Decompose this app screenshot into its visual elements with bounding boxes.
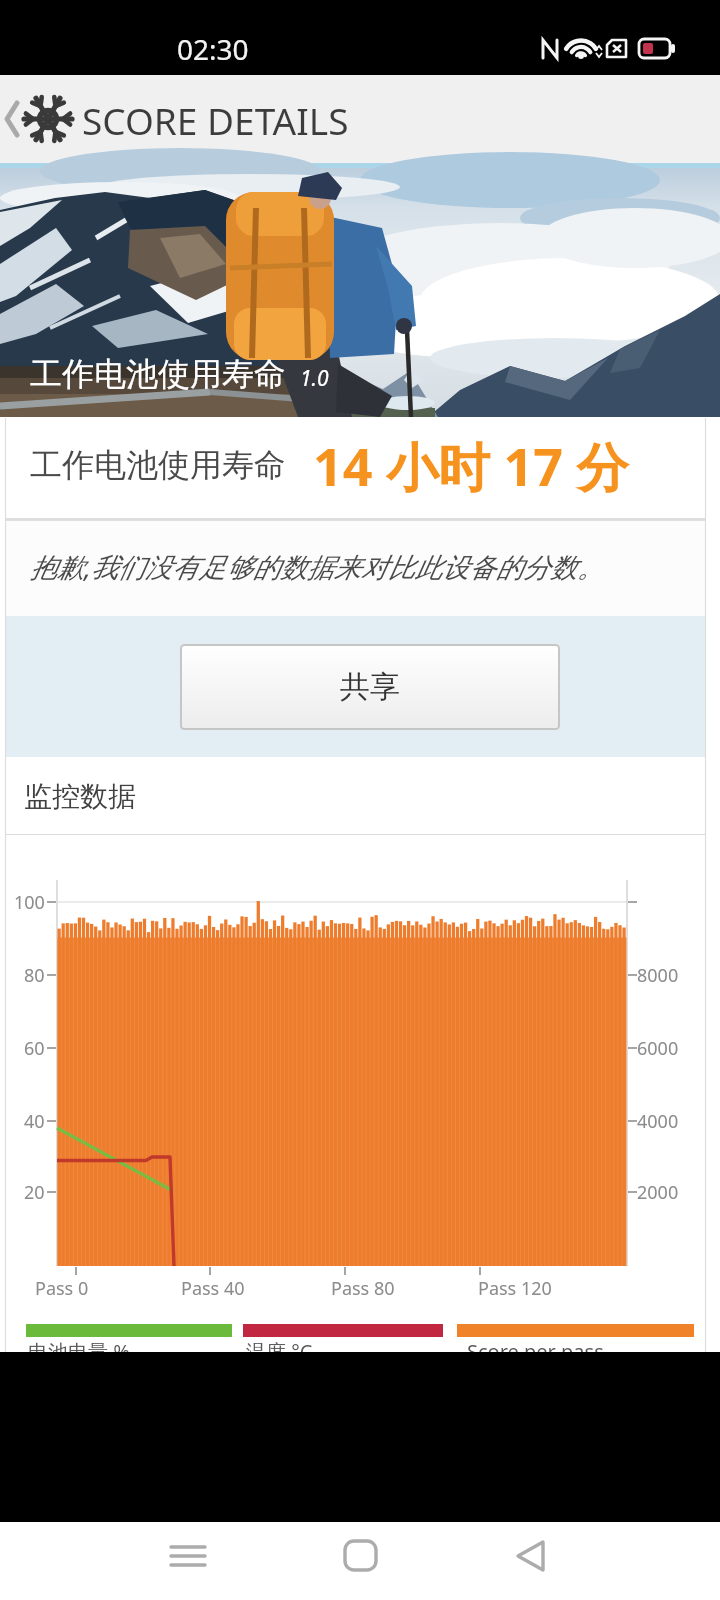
staticText: 02:30: [177, 30, 249, 68]
staticText: 2000: [637, 1180, 679, 1205]
staticText: 40: [24, 1109, 45, 1134]
staticText: 抱歉,我们没有足够的数据来对比此设备的分数。: [30, 548, 604, 585]
staticText: SCORE DETAILS: [82, 95, 349, 145]
staticText: 4000: [637, 1109, 679, 1134]
staticText: 20: [24, 1180, 45, 1205]
staticText: 100: [14, 890, 45, 915]
staticText: Pass 0: [35, 1276, 89, 1301]
staticText: Pass 40: [181, 1276, 245, 1301]
staticText: Pass 80: [331, 1276, 395, 1301]
staticText: 60: [24, 1036, 45, 1061]
staticText: Pass 120: [478, 1276, 552, 1301]
button[interactable]: 共享: [180, 644, 560, 730]
staticText: 电池电量 %: [28, 1338, 130, 1352]
button[interactable]: [0, 75, 75, 163]
button[interactable]: [490, 1522, 570, 1600]
staticText: 监控数据: [24, 779, 136, 814]
staticText: 14 小时 17 分: [313, 430, 629, 501]
staticText: 工作电池使用寿命: [30, 445, 286, 485]
staticText: Score per pass: [467, 1338, 604, 1352]
staticText: 温度 °C: [246, 1338, 313, 1352]
staticText: 80: [24, 963, 45, 988]
staticText: 6000: [637, 1036, 679, 1061]
button[interactable]: [150, 1522, 230, 1600]
button[interactable]: [320, 1522, 400, 1600]
staticText: 8000: [637, 963, 679, 988]
staticText: 共享: [340, 668, 400, 706]
staticText: 工作电池使用寿命: [30, 354, 286, 394]
staticText: 1.0: [300, 364, 329, 393]
